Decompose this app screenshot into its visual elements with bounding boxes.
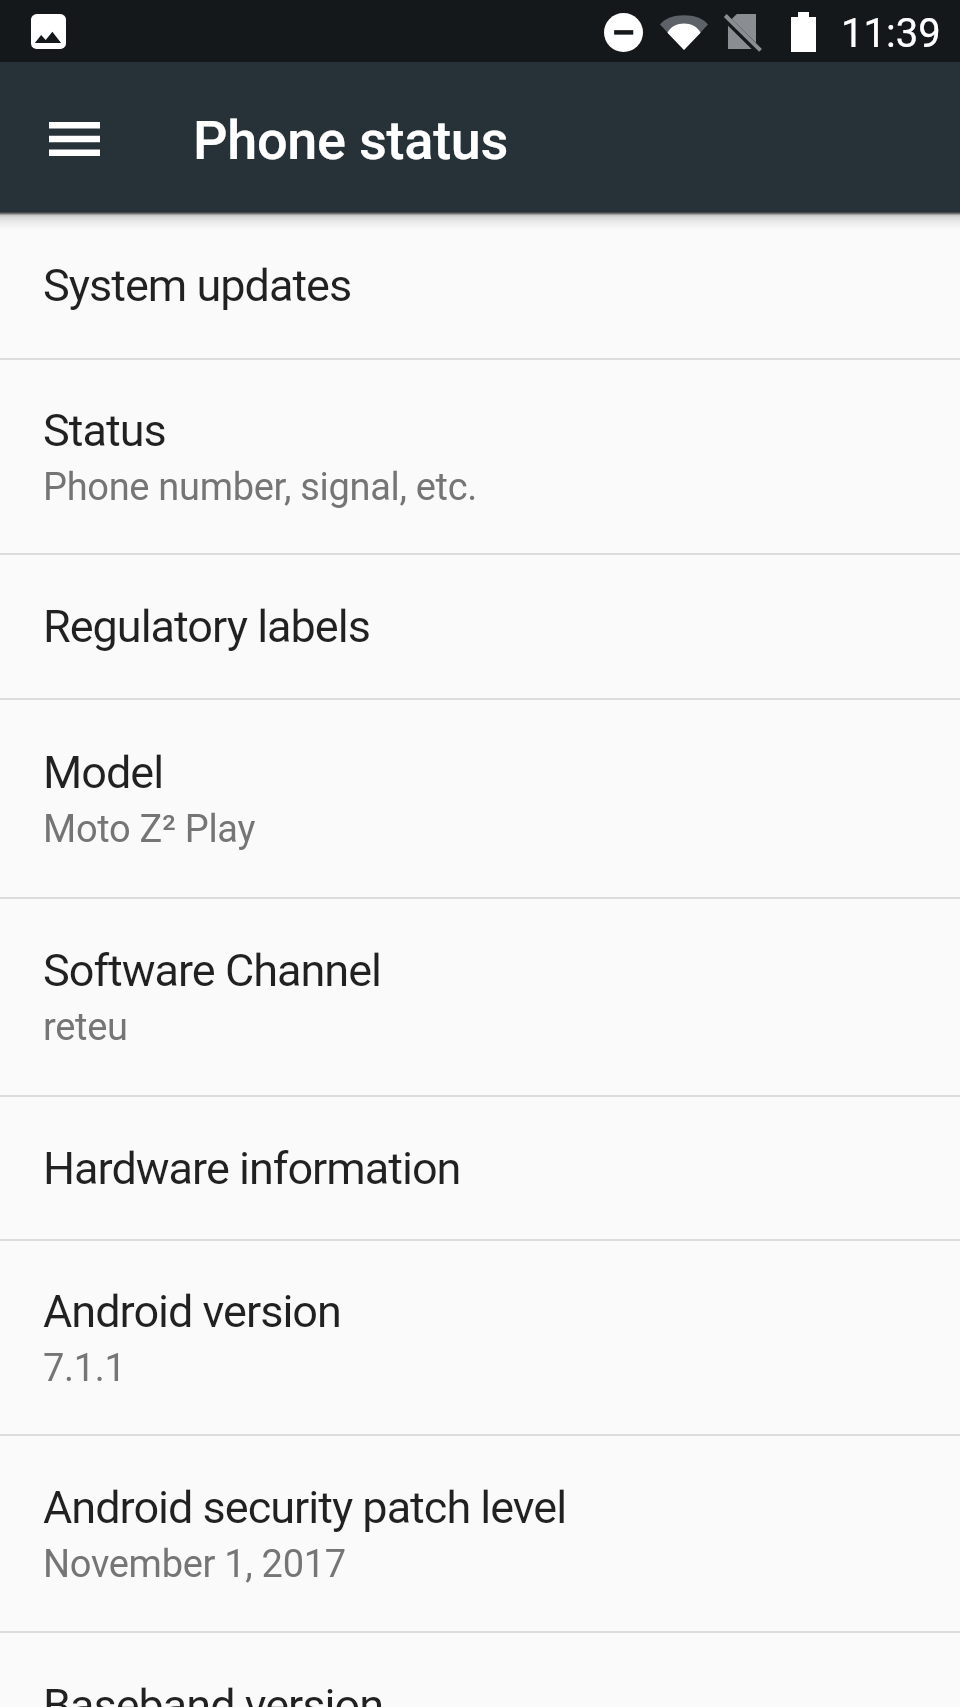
button[interactable]: Hardware information [0, 1097, 960, 1239]
staticText: 11:39 [841, 10, 941, 57]
button[interactable]: Baseband version [0, 1633, 960, 1707]
button[interactable]: Open navigation menu [26, 91, 122, 187]
staticText: Status [43, 404, 166, 457]
staticText: Hardware information [43, 1142, 461, 1195]
button[interactable]: Android security patch level [0, 1436, 960, 1631]
staticText: Baseband version [43, 1679, 384, 1707]
button[interactable]: Status [0, 360, 960, 553]
button[interactable]: Android version [0, 1241, 960, 1434]
staticText: Android security patch level [43, 1481, 567, 1534]
staticText: Phone status [193, 109, 509, 172]
button[interactable]: Software Channel [0, 899, 960, 1095]
staticText: Model [43, 746, 164, 799]
staticText: Regulatory labels [43, 600, 370, 653]
staticText: Phone number, signal, etc. [43, 465, 478, 510]
staticText: reteu [43, 1005, 128, 1050]
staticText: System updates [43, 259, 352, 312]
button[interactable]: System updates [0, 212, 960, 358]
staticText: 7.1.1 [43, 1346, 126, 1391]
staticText: Moto Z² Play [43, 807, 256, 852]
staticText: November 1, 2017 [43, 1542, 346, 1587]
button[interactable]: Model [0, 700, 960, 897]
button[interactable]: Regulatory labels [0, 555, 960, 698]
staticText: Android version [43, 1285, 341, 1338]
staticText: Software Channel [43, 944, 381, 997]
